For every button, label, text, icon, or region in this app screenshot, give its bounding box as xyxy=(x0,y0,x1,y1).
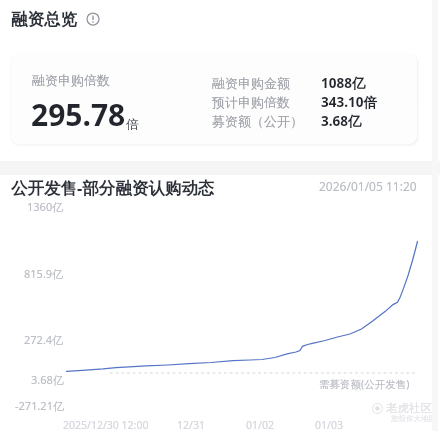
staticText: 1360亿 xyxy=(27,199,64,214)
staticText: 01/03 xyxy=(315,418,343,431)
staticText: 3.68亿 xyxy=(321,112,362,130)
staticText: 需募资额(公开发售) xyxy=(319,377,410,391)
staticText: 老虎社区 xyxy=(386,401,432,415)
staticText: 募资额（公开） xyxy=(212,113,303,129)
staticText: 272.4亿 xyxy=(24,332,64,347)
staticText: 01/02 xyxy=(246,418,274,431)
staticText: 1088亿 xyxy=(321,74,366,92)
staticText: 公开发售-部分融资认购动态 xyxy=(11,176,215,199)
other: 说明 xyxy=(84,10,102,28)
staticText: 295.78 xyxy=(31,94,126,135)
staticText: 融资申购倍数 xyxy=(32,72,110,88)
staticText: 2025/12/30 12:00 xyxy=(63,418,149,431)
staticText: 815.9亿 xyxy=(24,266,64,281)
staticText: 融资总览 xyxy=(11,9,77,30)
staticText: 3.68亿 xyxy=(31,372,64,387)
staticText: 您投你大地区 xyxy=(391,414,436,423)
button[interactable]: 融资总览 xyxy=(11,5,102,33)
staticText: 倍 xyxy=(126,116,139,132)
staticText: -271.21亿 xyxy=(15,398,64,413)
staticText: 12/31 xyxy=(177,418,205,431)
button[interactable]: 融资申购倍数 xyxy=(11,54,417,144)
staticText: 融资申购金额 xyxy=(212,75,290,91)
staticText: 预计申购倍数 xyxy=(212,94,290,110)
staticText: 2026/01/05 11:20 xyxy=(319,178,417,194)
staticText: 343.10倍 xyxy=(321,93,377,111)
